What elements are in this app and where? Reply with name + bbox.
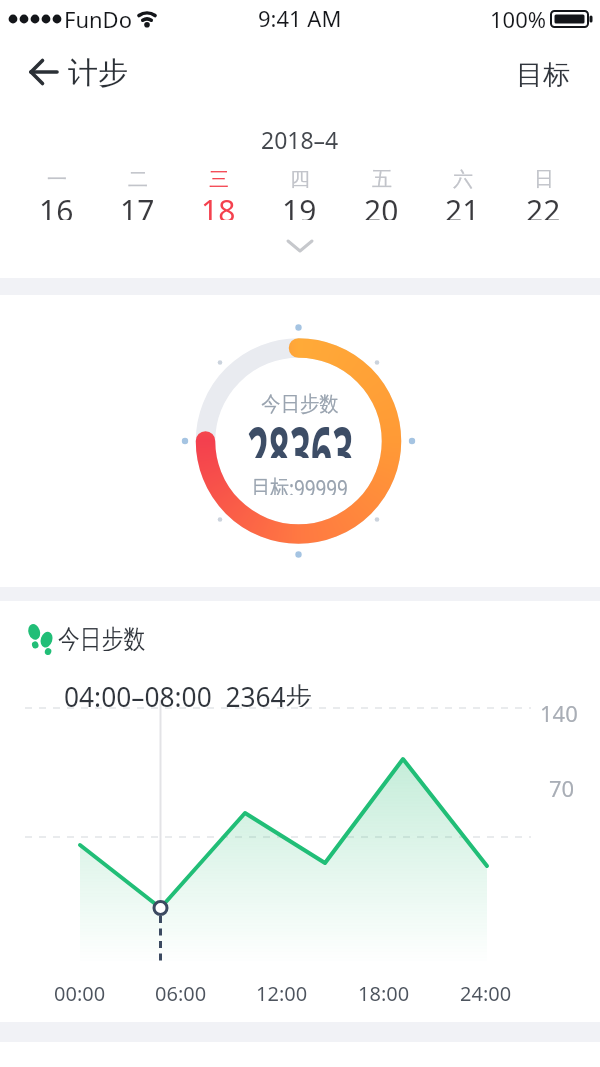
staticText: 19 xyxy=(282,190,317,220)
staticText: 18 xyxy=(201,190,236,220)
button[interactable]: 六 xyxy=(422,167,503,223)
button[interactable]: 四 xyxy=(259,167,340,223)
staticText: 22 xyxy=(526,190,561,220)
staticText: 140 xyxy=(540,698,578,722)
staticText: 9:41 AM xyxy=(258,3,342,29)
staticText: 12:00 xyxy=(256,980,308,1004)
staticText: FunDo xyxy=(64,4,132,30)
staticText: 21 xyxy=(445,190,480,220)
staticText: 计步 xyxy=(68,54,128,88)
staticText: 2018–4 xyxy=(261,124,339,150)
staticText: 目标 xyxy=(516,58,570,88)
staticText: 100% xyxy=(490,4,547,30)
button[interactable]: 计步 xyxy=(68,54,148,88)
button[interactable]: 二 xyxy=(97,167,178,223)
staticText: 目标:99999 xyxy=(252,471,348,495)
staticText: 06:00 xyxy=(155,980,207,1004)
button[interactable]: 日 xyxy=(503,167,584,223)
staticText: 20 xyxy=(364,190,399,220)
button[interactable] xyxy=(280,234,320,258)
staticText: 18:00 xyxy=(358,980,410,1004)
staticText: 四 xyxy=(290,167,310,191)
staticText: 五 xyxy=(372,167,392,191)
button[interactable]: 一 xyxy=(16,167,97,223)
button[interactable]: 三 xyxy=(178,167,259,223)
staticText: 04:00–08:00 2364步 xyxy=(64,677,312,707)
staticText: 今日步数 xyxy=(58,623,145,651)
staticText: 24:00 xyxy=(460,980,512,1004)
button[interactable]: 目标 xyxy=(510,58,570,88)
staticText: 今日步数 xyxy=(261,391,339,417)
staticText: 28363 xyxy=(247,404,354,458)
staticText: 六 xyxy=(453,167,473,191)
staticText: 17 xyxy=(120,190,155,220)
staticText: 日 xyxy=(534,167,554,191)
staticText: 一 xyxy=(47,167,67,191)
staticText: 二 xyxy=(128,167,148,191)
staticText: 00:00 xyxy=(54,980,106,1004)
staticText: 70 xyxy=(549,773,575,797)
staticText: 16 xyxy=(39,190,74,220)
button[interactable]: 五 xyxy=(341,167,422,223)
staticText: 三 xyxy=(209,167,229,191)
